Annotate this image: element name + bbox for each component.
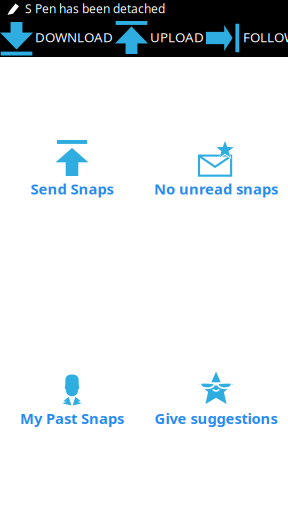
- button[interactable]: DOWNLOAD: [0, 17, 113, 57]
- staticText: No unread snaps: [154, 179, 278, 198]
- button[interactable]: No unread snaps: [144, 140, 288, 198]
- button[interactable]: Give suggestions: [144, 369, 288, 428]
- button[interactable]: My Past Snaps: [0, 369, 144, 428]
- button[interactable]: Send Snaps: [0, 140, 144, 198]
- staticText: DOWNLOAD: [35, 28, 113, 46]
- staticText: UPLOAD: [150, 28, 204, 46]
- button[interactable]: FOLLOW: [206, 17, 288, 57]
- staticText: S Pen has been detached: [25, 0, 165, 16]
- staticText: FOLLOW: [243, 28, 288, 46]
- staticText: My Past Snaps: [20, 408, 124, 428]
- staticText: Give suggestions: [154, 408, 277, 428]
- button[interactable]: UPLOAD: [115, 17, 204, 57]
- staticText: Send Snaps: [30, 179, 113, 198]
